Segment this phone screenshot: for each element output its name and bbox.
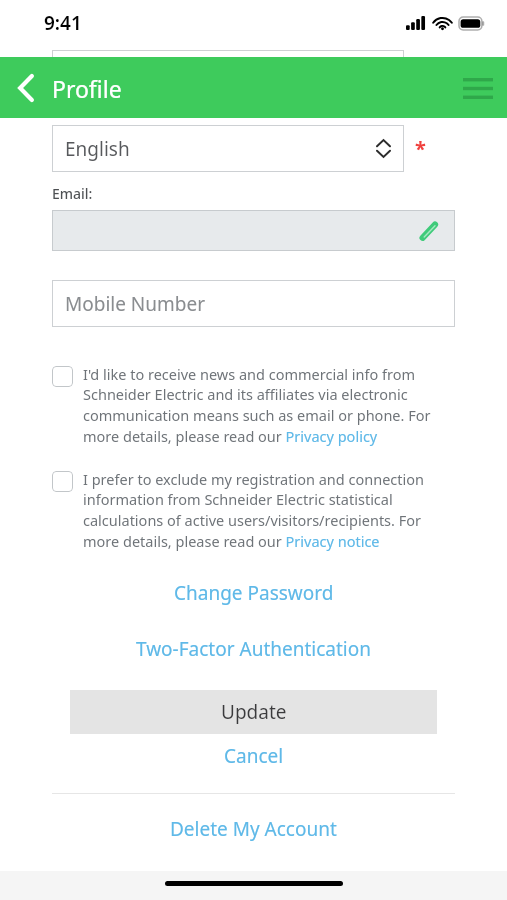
button[interactable]: Back bbox=[0, 62, 52, 114]
staticText: Mobile Number bbox=[65, 291, 206, 317]
staticText: Profile bbox=[52, 73, 122, 104]
other: Edit email bbox=[417, 219, 441, 243]
staticText: * bbox=[415, 135, 426, 162]
staticText: Email: bbox=[52, 184, 93, 203]
button[interactable]: Mobile Number bbox=[52, 280, 455, 327]
staticText: Two-Factor Authentication bbox=[136, 636, 371, 662]
button[interactable]: I'd like to receive news and commercial … bbox=[52, 364, 455, 447]
button[interactable]: English bbox=[52, 125, 404, 172]
staticText: English bbox=[65, 136, 130, 162]
button[interactable]: Change Password bbox=[52, 580, 455, 606]
button[interactable]: Edit email bbox=[52, 210, 455, 251]
button[interactable]: Two-Factor Authentication bbox=[52, 636, 455, 662]
button[interactable]: Menu bbox=[449, 59, 507, 117]
staticText: I'd like to receive news and commercial … bbox=[83, 364, 455, 447]
button[interactable]: Delete My Account bbox=[52, 816, 455, 842]
button[interactable]: Cancel bbox=[52, 743, 455, 769]
staticText: Update bbox=[221, 699, 287, 725]
staticText: 9:41 bbox=[44, 10, 82, 36]
staticText: Change Password bbox=[174, 580, 334, 606]
staticText: Cancel bbox=[224, 743, 284, 769]
button[interactable]: Update bbox=[70, 690, 437, 734]
staticText: Delete My Account bbox=[170, 816, 337, 842]
button[interactable]: I prefer to exclude my registration and … bbox=[52, 469, 455, 552]
staticText: I prefer to exclude my registration and … bbox=[83, 469, 455, 552]
